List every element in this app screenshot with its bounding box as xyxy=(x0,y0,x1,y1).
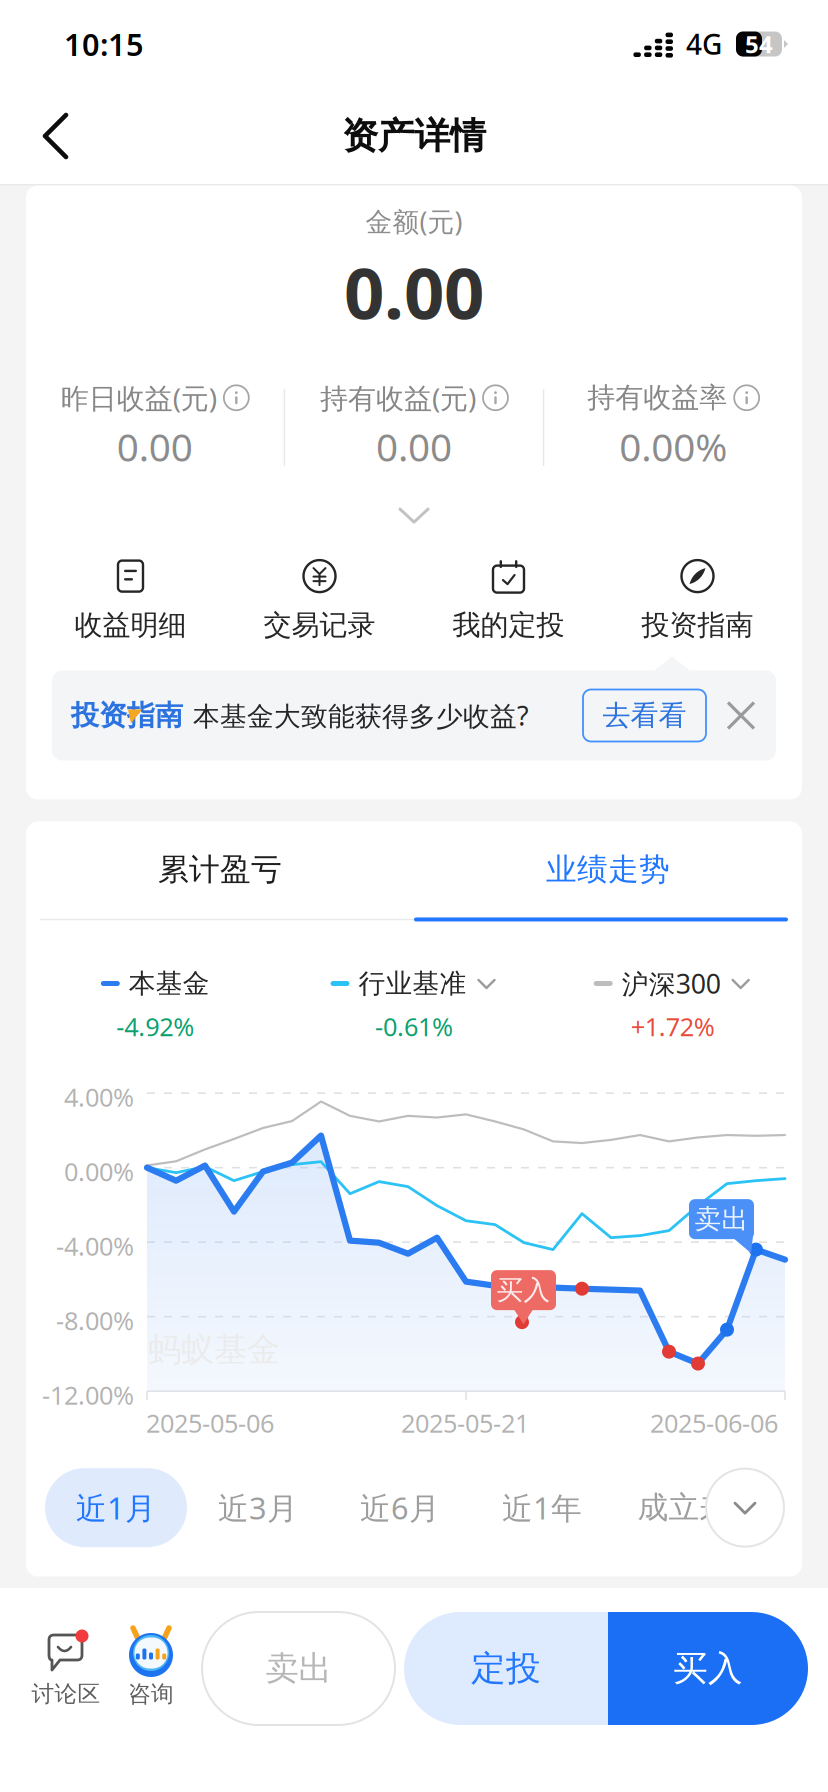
staticText: 行业基准 xyxy=(358,967,466,1000)
button[interactable]: 近1年 xyxy=(471,1468,613,1547)
button[interactable]: 近3月 xyxy=(187,1468,329,1547)
button[interactable]: 近1月 xyxy=(45,1468,187,1547)
staticText: 54 xyxy=(745,28,773,60)
staticText: 近3月 xyxy=(218,1487,298,1528)
staticText: 蚂蚁基金 xyxy=(148,1329,280,1370)
staticText: 资产详情 xyxy=(342,114,486,158)
button[interactable]: 更多周期 xyxy=(706,1469,784,1547)
staticText: 讨论区 xyxy=(31,1680,100,1708)
staticText: -0.61% xyxy=(375,1009,453,1043)
staticText: 咨询 xyxy=(128,1680,174,1708)
button[interactable]: 返回 xyxy=(20,100,92,172)
button[interactable]: 卖出 xyxy=(202,1612,395,1725)
staticText: 买入 xyxy=(673,1647,743,1690)
button[interactable]: 买入 xyxy=(608,1612,808,1725)
staticText: -12.00% xyxy=(42,1378,134,1412)
staticText: 收益明细 xyxy=(74,608,186,642)
staticText: 我的定投 xyxy=(452,608,564,642)
staticText: -4.00% xyxy=(56,1229,134,1263)
staticText: -4.92% xyxy=(116,1009,194,1043)
staticText: 累计盈亏 xyxy=(158,851,282,888)
staticText: 沪深300 xyxy=(622,966,721,1001)
staticText: 投资指南 xyxy=(71,698,183,733)
button[interactable]: 讨论区 xyxy=(20,1612,112,1708)
staticText: 定投 xyxy=(471,1647,541,1690)
staticText: 近1月 xyxy=(76,1487,156,1528)
button[interactable]: 去看看 xyxy=(583,689,706,741)
staticText: 本基金 xyxy=(129,967,210,1000)
staticText: 4G xyxy=(686,25,722,63)
staticText: 2025-05-21 xyxy=(401,1406,529,1440)
staticText: 4.00% xyxy=(64,1080,134,1114)
button[interactable]: 累计盈亏 xyxy=(26,821,414,917)
staticText: 近6月 xyxy=(360,1487,440,1528)
staticText: 交易记录 xyxy=(263,608,375,642)
staticText: 投资指南 xyxy=(641,608,753,642)
staticText: 0.00 xyxy=(117,421,193,472)
staticText: 卖出 xyxy=(694,1203,748,1236)
button[interactable]: 交易记录 xyxy=(225,560,414,642)
staticText: 成立来 xyxy=(637,1489,730,1526)
staticText: +1.72% xyxy=(631,1009,715,1043)
button[interactable]: 关闭 xyxy=(714,688,768,742)
button[interactable]: 成立来 xyxy=(613,1468,755,1547)
staticText: 卖出 xyxy=(265,1648,331,1689)
staticText: 10:15 xyxy=(64,24,144,64)
staticText: 持有收益率 xyxy=(587,381,727,415)
staticText: 买入 xyxy=(496,1274,550,1307)
staticText: 0.00% xyxy=(64,1155,134,1188)
staticText: 业绩走势 xyxy=(546,851,670,888)
button[interactable]: 咨询 xyxy=(112,1612,190,1708)
staticText: 本基金大致能获得多少收益? xyxy=(193,698,529,733)
staticText: 昨日收益(元) xyxy=(61,379,217,416)
button[interactable]: 业绩走势 xyxy=(414,821,802,917)
staticText: -8.00% xyxy=(56,1304,134,1337)
staticText: 2025-06-06 xyxy=(650,1406,778,1440)
button[interactable]: 我的定投 xyxy=(414,560,603,642)
staticText: 2025-05-06 xyxy=(146,1406,274,1440)
button[interactable]: 定投 xyxy=(404,1612,608,1725)
staticText: 持有收益(元) xyxy=(320,379,476,416)
staticText: 0.00% xyxy=(619,421,727,472)
staticText: 金额(元) xyxy=(365,203,462,239)
staticText: 近1年 xyxy=(502,1487,582,1528)
button[interactable]: 展开 xyxy=(369,494,459,536)
staticText: 去看看 xyxy=(602,698,686,733)
button[interactable]: 收益明细 xyxy=(36,560,225,642)
button[interactable]: 投资指南 xyxy=(603,560,792,642)
staticText: 0.00 xyxy=(344,245,484,339)
button[interactable]: 近6月 xyxy=(329,1468,471,1547)
staticText: 0.00 xyxy=(376,421,452,472)
